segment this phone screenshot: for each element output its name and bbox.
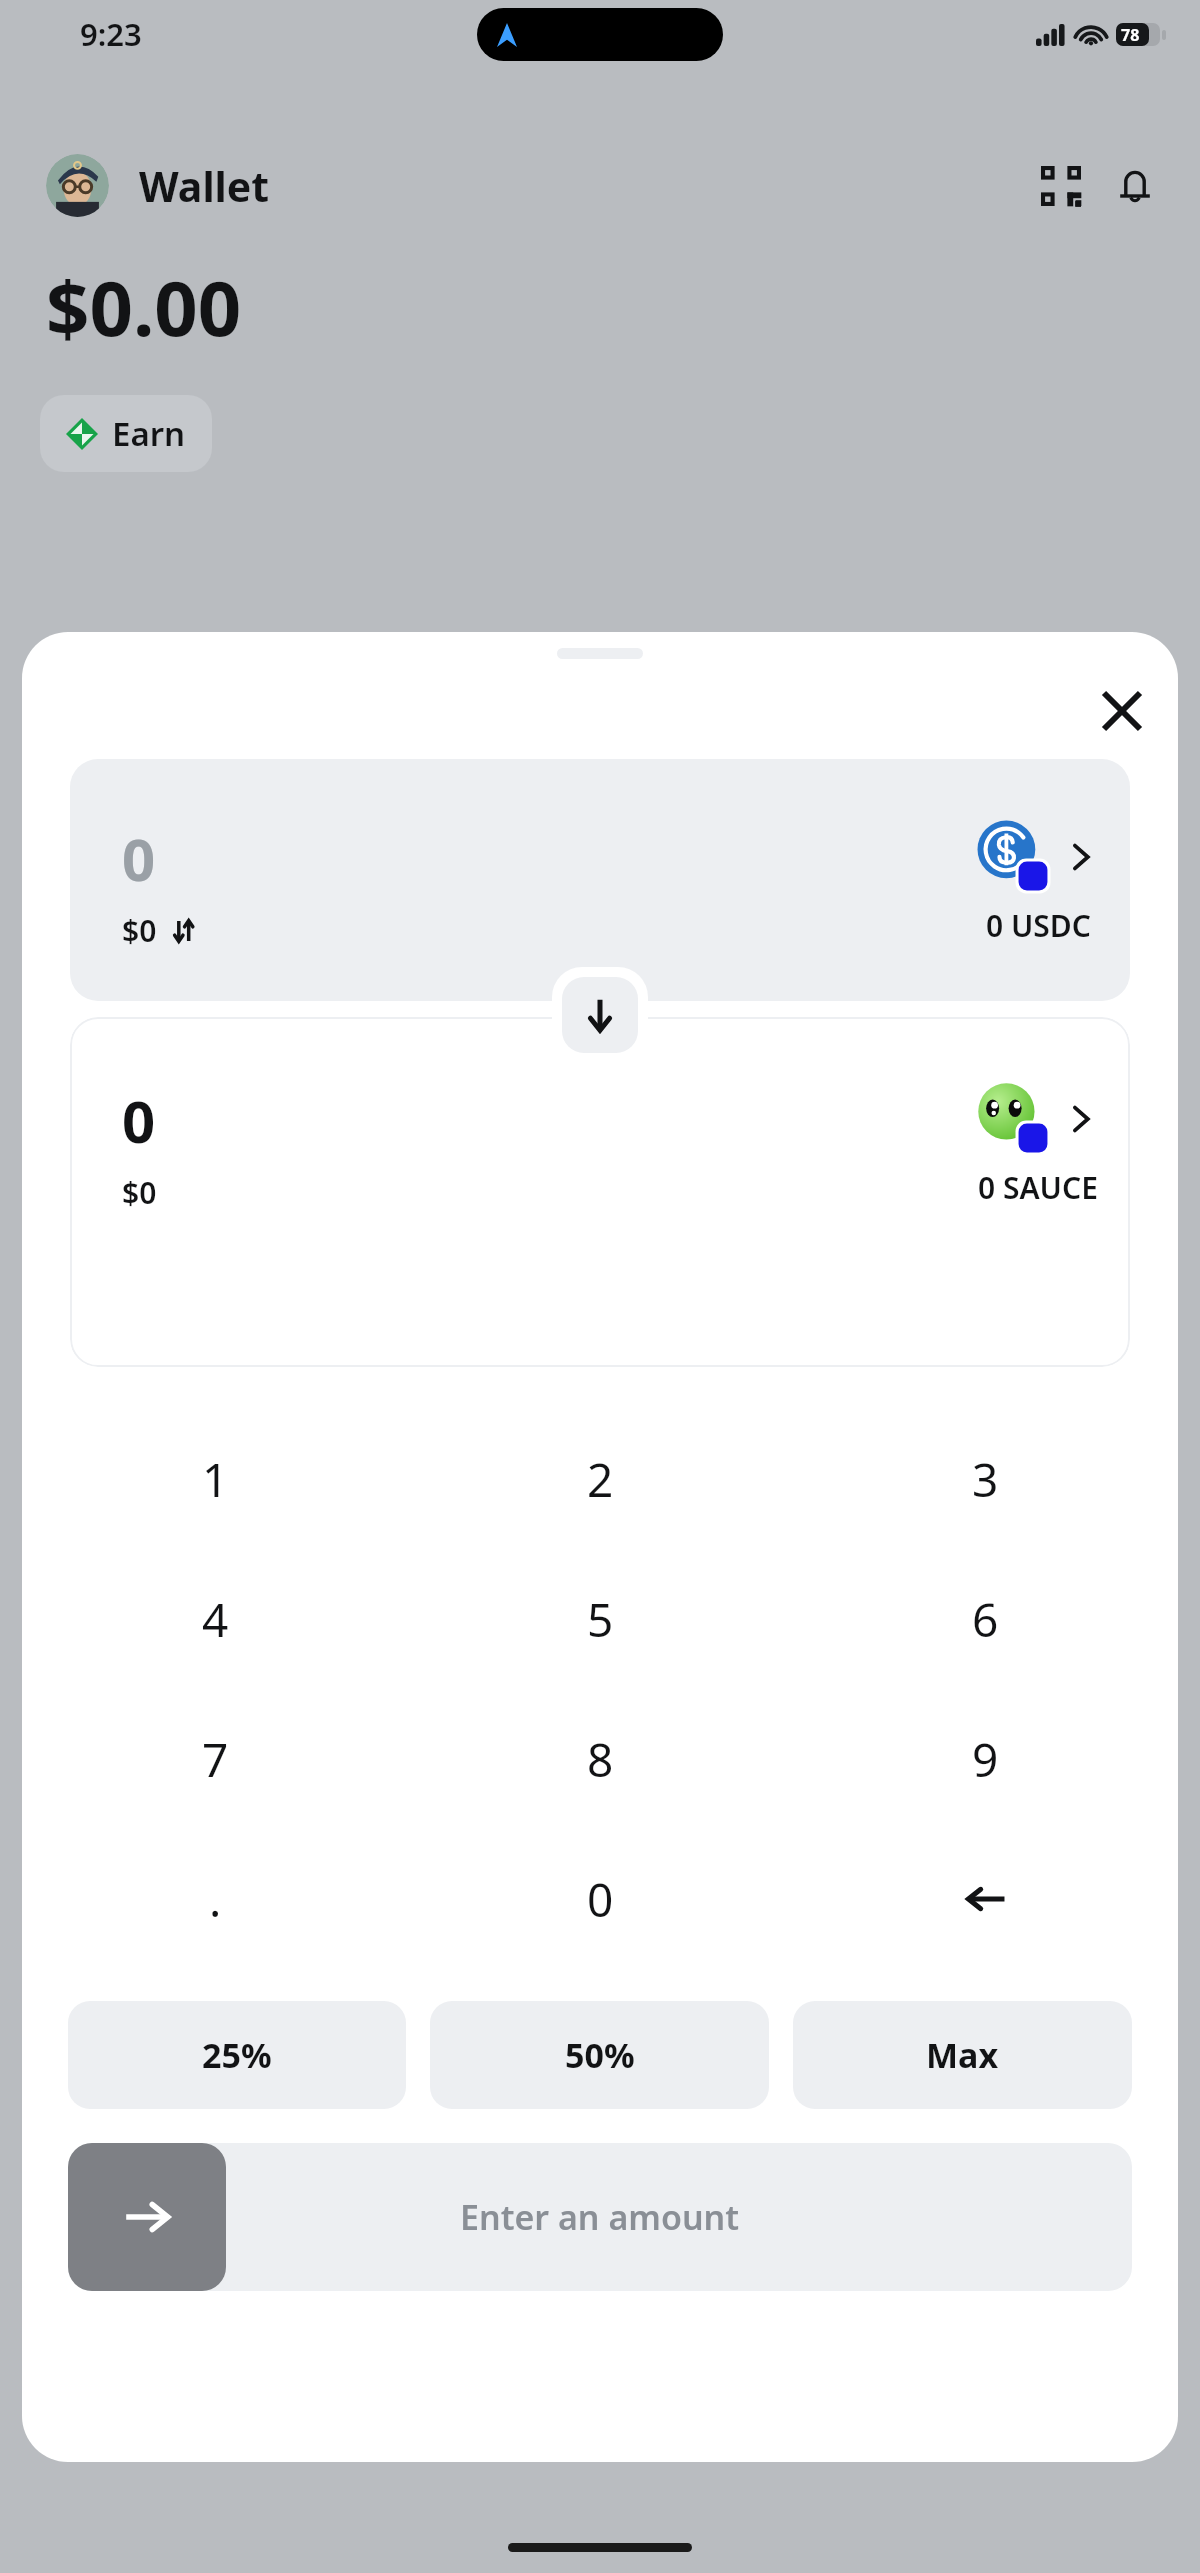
staticText: Wallet bbox=[139, 158, 270, 214]
button[interactable]: Close bbox=[1092, 681, 1152, 741]
staticText: 3 bbox=[972, 1448, 999, 1511]
staticText: 7 bbox=[202, 1728, 229, 1791]
staticText: 6 bbox=[972, 1588, 999, 1651]
button[interactable]: Profile bbox=[46, 154, 109, 217]
staticText: 1 bbox=[202, 1448, 229, 1511]
staticText: 25% bbox=[202, 2032, 272, 2078]
staticText: $0.00 bbox=[46, 255, 242, 359]
staticText: 0 SAUCE bbox=[978, 1167, 1098, 1208]
button[interactable]: . bbox=[22, 1829, 408, 1969]
staticText: 0 bbox=[122, 1081, 156, 1160]
button[interactable]: Notifications bbox=[1106, 157, 1164, 215]
button[interactable]: Backspace bbox=[793, 1829, 1178, 1969]
button[interactable]: 8 bbox=[408, 1689, 793, 1829]
button[interactable]: 4 bbox=[22, 1549, 408, 1689]
staticText: 5 bbox=[587, 1588, 614, 1651]
staticText: 9:23 bbox=[80, 13, 142, 55]
button[interactable]: 0 bbox=[408, 1829, 793, 1969]
staticText: 50% bbox=[565, 2032, 635, 2078]
button[interactable]: 1 bbox=[22, 1409, 408, 1549]
staticText: Enter an amount bbox=[460, 2194, 740, 2240]
button[interactable]: Max bbox=[793, 2001, 1132, 2109]
button[interactable]: 0 bbox=[70, 1017, 1130, 1367]
button[interactable]: 9 bbox=[793, 1689, 1178, 1829]
button[interactable]: 7 bbox=[22, 1689, 408, 1829]
staticText: 0 bbox=[587, 1868, 614, 1931]
staticText: 0 USDC bbox=[986, 905, 1091, 946]
staticText: 4 bbox=[202, 1588, 229, 1651]
staticText: Max bbox=[926, 2032, 999, 2078]
staticText: 78 bbox=[1121, 24, 1140, 46]
button[interactable]: 25% bbox=[68, 2001, 406, 2109]
staticText: Earn bbox=[112, 411, 186, 456]
staticText: 2 bbox=[587, 1448, 614, 1511]
button[interactable]: 0 bbox=[70, 759, 1130, 1001]
staticText: $0 bbox=[122, 1172, 157, 1213]
staticText: . bbox=[209, 1868, 222, 1931]
button[interactable]: Earn bbox=[40, 395, 212, 472]
staticText: 9 bbox=[972, 1728, 999, 1791]
button[interactable]: Continue bbox=[68, 2143, 226, 2291]
button[interactable]: Enter an amount bbox=[68, 2143, 1132, 2291]
button[interactable]: 50% bbox=[430, 2001, 769, 2109]
button[interactable]: 6 bbox=[793, 1549, 1178, 1689]
button[interactable]: Swap direction bbox=[562, 977, 638, 1053]
button[interactable]: 2 bbox=[408, 1409, 793, 1549]
button[interactable]: 5 bbox=[408, 1549, 793, 1689]
button[interactable]: 3 bbox=[793, 1409, 1178, 1549]
staticText: 8 bbox=[587, 1728, 614, 1791]
button[interactable]: Scan QR code bbox=[1032, 157, 1090, 215]
staticText: $0 bbox=[122, 910, 157, 951]
staticText: 0 bbox=[122, 819, 156, 898]
